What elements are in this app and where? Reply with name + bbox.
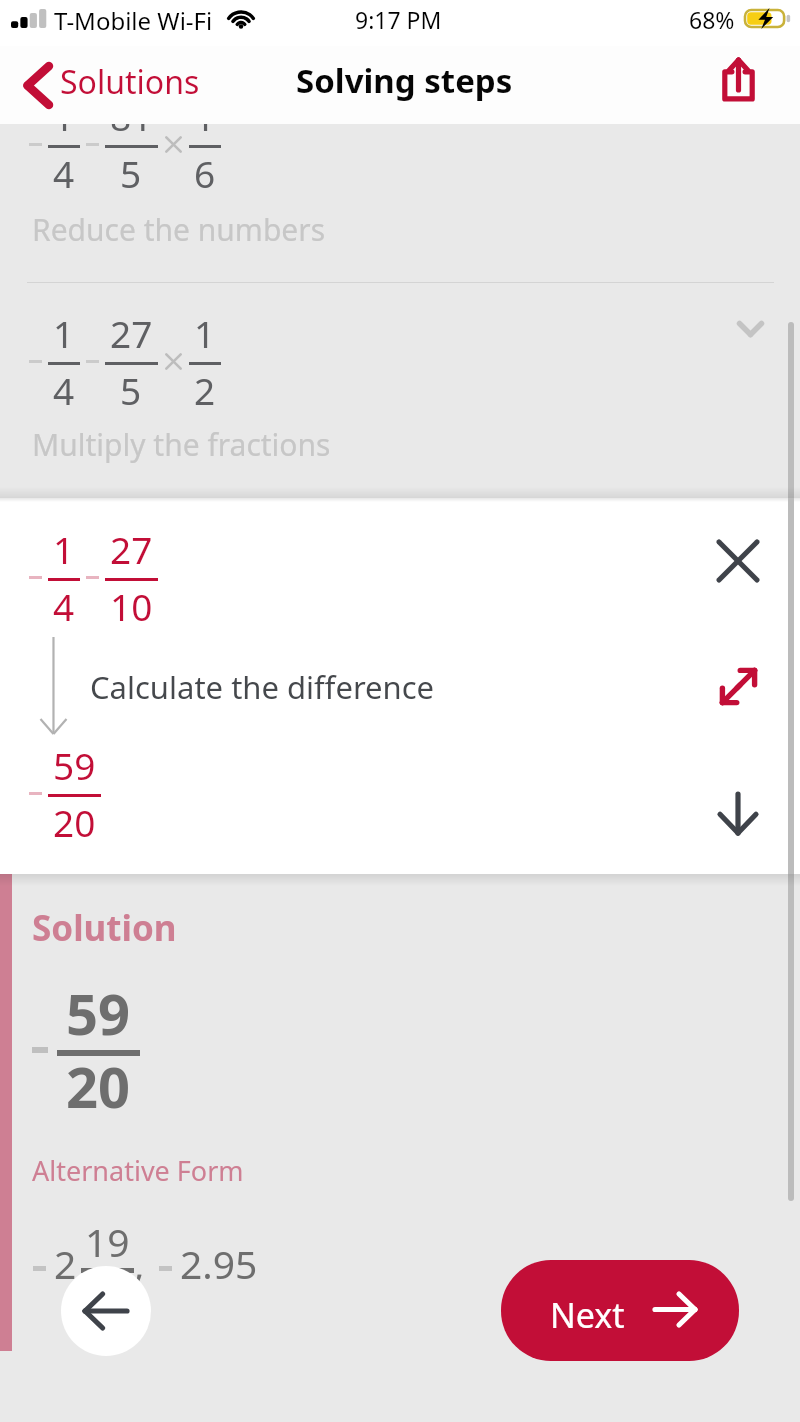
button[interactable]: Back xyxy=(61,1266,151,1356)
staticText: Next xyxy=(550,1292,625,1338)
staticText: Alternative Form xyxy=(32,1152,244,1189)
staticText: 1 xyxy=(194,308,216,358)
button[interactable]: Next step xyxy=(708,783,768,843)
staticText: 27 xyxy=(110,308,153,358)
staticText: 10 xyxy=(110,581,153,631)
staticText: 1 xyxy=(194,124,216,141)
staticText: 2 xyxy=(54,1237,77,1290)
staticText: 4 xyxy=(53,581,75,631)
staticText: 2 xyxy=(194,365,216,415)
staticText: Solving steps xyxy=(296,58,513,103)
staticText: 2.95 xyxy=(180,1237,258,1290)
staticText: T-Mobile Wi-Fi xyxy=(54,4,213,37)
staticText: 20 xyxy=(53,797,96,847)
staticText: 1 xyxy=(53,124,75,141)
staticText: 5 xyxy=(120,148,142,198)
button[interactable]: Close xyxy=(708,531,768,591)
staticText: 27 xyxy=(110,524,153,574)
staticText: , xyxy=(134,1237,145,1290)
staticText: 59 xyxy=(66,975,131,1051)
button[interactable]: Share xyxy=(706,46,770,110)
staticText: 6 xyxy=(194,148,216,198)
staticText: Solution xyxy=(32,904,177,952)
staticText: 20 xyxy=(85,1268,130,1321)
staticText: 1 xyxy=(53,308,75,358)
button[interactable]: Expand step xyxy=(720,299,780,359)
staticText: 4 xyxy=(53,365,75,415)
button[interactable]: Next xyxy=(501,1260,739,1361)
staticText: 20 xyxy=(66,1048,131,1124)
staticText: 9:17 PM xyxy=(355,4,442,35)
staticText: Multiply the fractions xyxy=(32,424,331,465)
staticText: 1 xyxy=(53,524,75,574)
button[interactable]: Solutions xyxy=(25,46,200,124)
staticText: 59 xyxy=(53,740,96,790)
button[interactable]: Expand xyxy=(708,656,768,716)
staticText: 5 xyxy=(120,365,142,415)
staticText: 68% xyxy=(689,4,735,35)
staticText: 19 xyxy=(85,1215,130,1268)
staticText: 81 xyxy=(110,124,153,141)
staticText: Reduce the numbers xyxy=(32,209,326,250)
staticText: Calculate the difference xyxy=(90,666,435,708)
staticText: Solutions xyxy=(60,60,200,104)
staticText: 4 xyxy=(53,148,75,198)
